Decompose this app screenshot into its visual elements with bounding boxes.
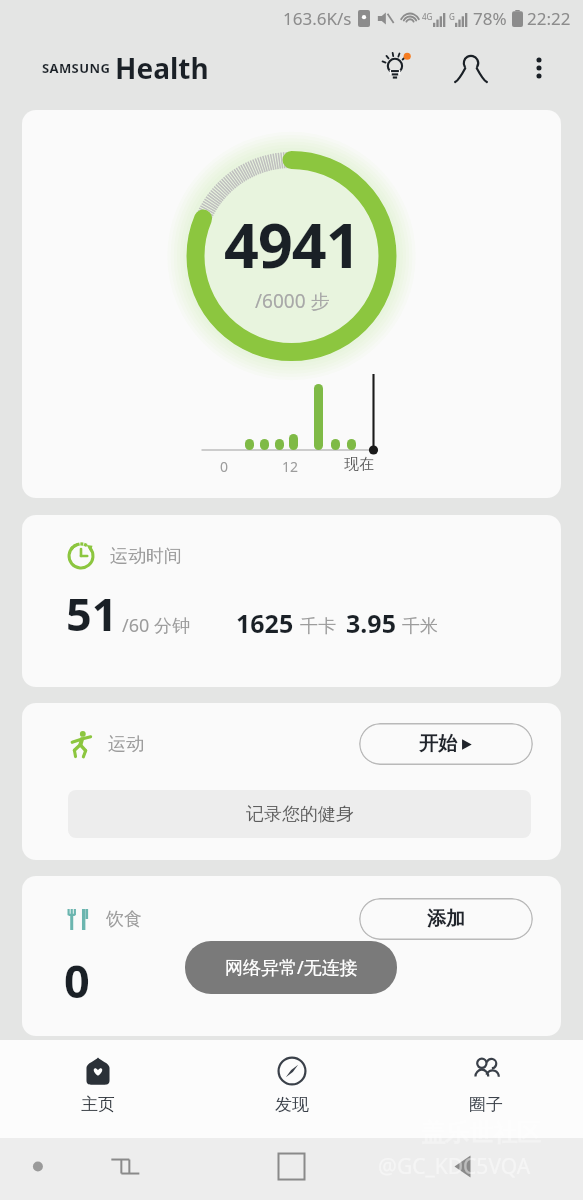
button[interactable]: 发现 xyxy=(195,1040,389,1138)
staticText: 千米 xyxy=(402,615,438,638)
staticText: 4G xyxy=(422,11,433,22)
staticText: G xyxy=(449,11,455,22)
button[interactable]: 记录您的健身 xyxy=(68,790,531,838)
button[interactable]: 添加 xyxy=(359,898,533,940)
staticText: 千卡 xyxy=(300,615,336,638)
button[interactable]: 主页 xyxy=(0,1040,195,1138)
staticText: /6000 步 xyxy=(255,288,330,314)
button[interactable]: 运动时间 xyxy=(22,515,561,687)
staticText: 12 xyxy=(282,457,299,476)
button[interactable]: Tips xyxy=(373,44,421,92)
staticText: 添加 xyxy=(427,907,465,931)
staticText: 运动时间 xyxy=(110,545,182,568)
button[interactable]: 开始 xyxy=(359,723,533,765)
staticText: 开始 xyxy=(419,732,457,756)
staticText: 现在 xyxy=(344,455,374,474)
staticText: SAMSUNG xyxy=(42,59,111,77)
staticText: 22:22 xyxy=(527,7,571,30)
staticText: 主页 xyxy=(81,1094,115,1115)
staticText: 运动 xyxy=(108,733,144,756)
button[interactable]: 圈子 xyxy=(389,1040,583,1138)
staticText: 1625 xyxy=(236,606,294,640)
staticText: 网络异常/无连接 xyxy=(225,955,358,980)
staticText: 3.95 xyxy=(346,606,396,640)
staticText: 发现 xyxy=(275,1094,309,1115)
staticText: Health xyxy=(115,49,209,87)
staticText: 78% xyxy=(473,7,507,30)
staticText: 盖乐世社区 xyxy=(421,1118,541,1148)
button[interactable]: 运动 xyxy=(22,703,561,860)
staticText: 163.6K/s xyxy=(283,7,352,30)
button[interactable]: 4941 xyxy=(22,110,561,498)
staticText: @GC_KDC5VQA xyxy=(378,1152,531,1181)
button[interactable]: More options xyxy=(517,46,561,90)
staticText: 圈子 xyxy=(469,1094,503,1115)
staticText: 饮食 xyxy=(106,908,142,931)
staticText: 4941 xyxy=(224,203,360,286)
staticText: 0 xyxy=(64,950,90,1011)
staticText: 记录您的健身 xyxy=(246,803,354,826)
staticText: /60 分钟 xyxy=(122,613,190,638)
staticText: 51 xyxy=(66,583,118,644)
staticText: 0 xyxy=(220,457,229,476)
button[interactable]: 饮食 xyxy=(22,876,561,1036)
button[interactable]: Profile xyxy=(447,44,495,92)
